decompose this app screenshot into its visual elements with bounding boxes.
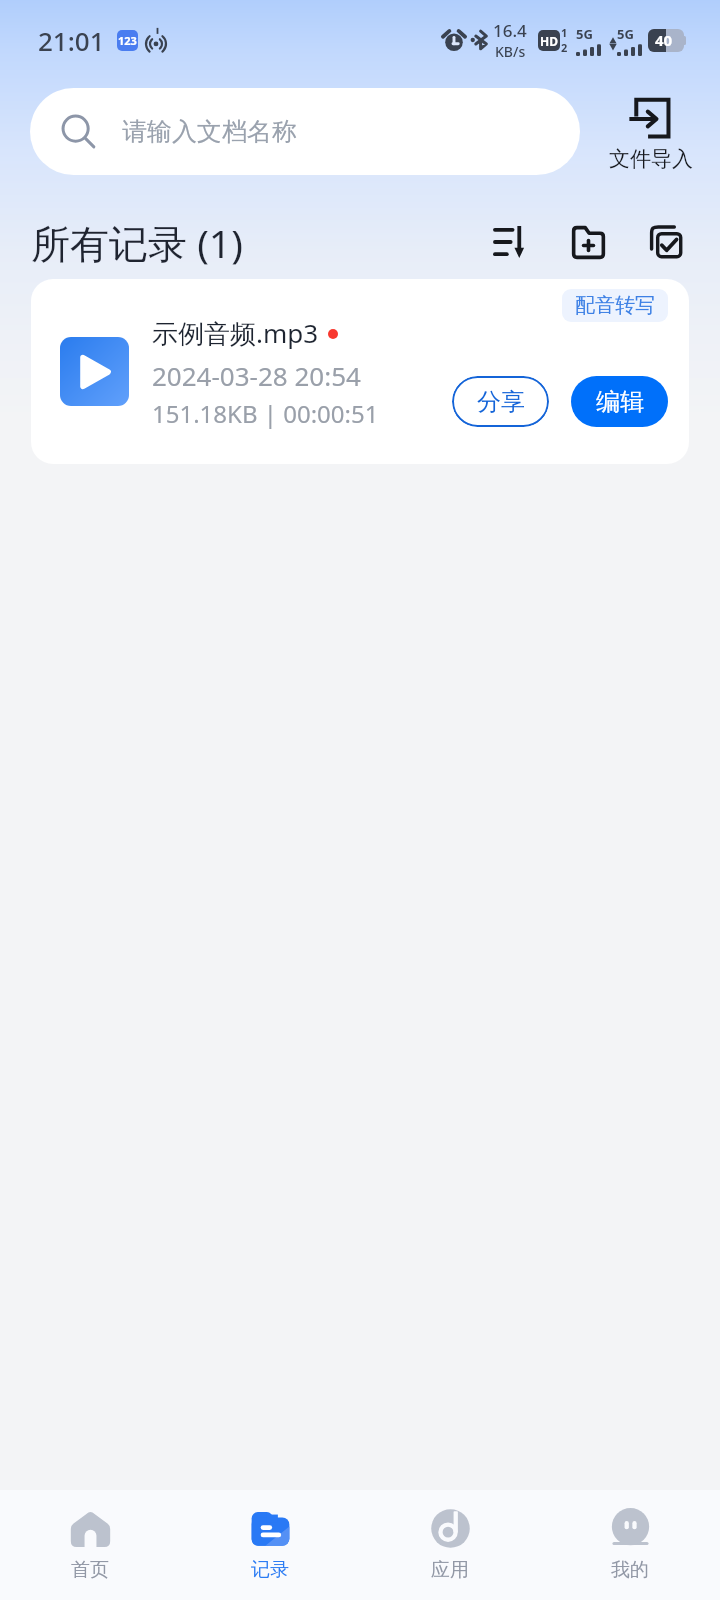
button[interactable]: 分享 <box>452 376 549 427</box>
staticText: 记录 <box>251 1558 289 1582</box>
staticText: 2 <box>561 40 568 55</box>
button[interactable]: Select <box>638 214 694 270</box>
staticText: 首页 <box>71 1558 109 1582</box>
staticText: 分享 <box>477 387 525 417</box>
button[interactable]: 编辑 <box>571 376 668 427</box>
staticText: 示例音频.mp3 <box>152 315 319 351</box>
staticText: 应用 <box>431 1558 469 1582</box>
staticText: 请输入文档名称 <box>122 116 297 147</box>
staticText: 我的 <box>611 1558 649 1582</box>
button[interactable]: 请输入文档名称 <box>30 88 580 175</box>
staticText: 编辑 <box>596 387 644 417</box>
button[interactable]: 文件导入 <box>597 96 705 176</box>
button[interactable]: New folder <box>560 214 616 270</box>
staticText: 151.18KB | 00:00:51 <box>152 397 379 430</box>
staticText: 5G <box>617 25 634 43</box>
staticText: 21:01 <box>38 23 105 58</box>
staticText: 配音转写 <box>575 293 655 318</box>
button[interactable]: Sort <box>482 214 538 270</box>
staticText: 2024-03-28 20:54 <box>152 358 361 393</box>
button[interactable]: 配音转写 <box>31 279 689 464</box>
staticText: 123 <box>118 33 137 48</box>
staticText: 所有记录 (1) <box>31 216 243 269</box>
staticText: 文件导入 <box>609 146 693 172</box>
staticText: HD <box>540 33 558 49</box>
button[interactable]: 记录 <box>180 1504 360 1586</box>
button[interactable]: 应用 <box>360 1504 540 1586</box>
staticText: KB/s <box>495 42 526 61</box>
staticText: 40 <box>655 30 673 50</box>
staticText: 16.4 <box>493 19 527 42</box>
button[interactable]: 首页 <box>0 1504 180 1586</box>
staticText: 5G <box>576 25 593 43</box>
staticText: 1 <box>561 25 568 40</box>
button[interactable]: 我的 <box>540 1504 720 1586</box>
